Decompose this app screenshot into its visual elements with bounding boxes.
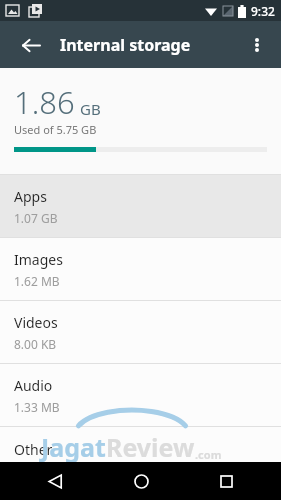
button[interactable]: Back (24, 462, 86, 500)
button[interactable]: Back (14, 28, 48, 62)
staticText: Internal storage (60, 34, 191, 56)
staticText: 1.07 GB (14, 210, 58, 226)
staticText: Used of 5.75 GB (14, 122, 97, 137)
button[interactable]: Home (110, 462, 172, 500)
staticText: Audio (14, 376, 53, 395)
button[interactable]: Audio (0, 364, 281, 427)
staticText: Images (14, 250, 63, 269)
button[interactable]: Other (0, 427, 281, 490)
staticText: 9:32 (251, 3, 275, 19)
staticText: 1.33 MB (14, 399, 60, 415)
button[interactable]: More options (239, 27, 275, 63)
staticText: .com (195, 447, 222, 462)
button[interactable]: Videos (0, 301, 281, 364)
staticText: 8.00 KB (14, 336, 57, 352)
staticText: 1.62 MB (14, 273, 60, 289)
button[interactable]: Images (0, 238, 281, 301)
staticText: 1.86 (14, 81, 75, 123)
button[interactable]: Recent apps (195, 462, 257, 500)
staticText: Jagat (41, 430, 106, 464)
staticText: Videos (14, 313, 58, 332)
staticText: GB (80, 99, 101, 119)
staticText: Apps (14, 187, 47, 206)
staticText: Other (14, 440, 53, 459)
button[interactable]: Apps (0, 175, 281, 238)
staticText: Review (106, 430, 195, 464)
